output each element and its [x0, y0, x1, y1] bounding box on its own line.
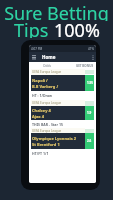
staticText: B.B Varberg / [32, 84, 59, 89]
button[interactable]: Chalcey 4 [29, 106, 96, 120]
staticText: Olympique Lyonnais 2 [32, 136, 76, 141]
button[interactable]: UEFA Europa League [29, 128, 96, 133]
staticText: 1.9 [87, 111, 92, 115]
button[interactable]: THIS BAR - Star 15 [29, 120, 96, 128]
staticText: Napoli / [32, 78, 48, 83]
staticText: HT/FT 1/1 [32, 151, 49, 156]
staticText: Odds [43, 64, 51, 68]
staticText: GET BONUS [76, 64, 94, 68]
other: Open navigation menu [32, 55, 36, 59]
staticText: UEFA Europa League [32, 129, 62, 133]
staticText: HT : 1/Draw [32, 93, 53, 98]
staticText: 41% [88, 47, 94, 51]
staticText: 1.95 [87, 81, 93, 85]
other: More options [92, 55, 94, 60]
staticText: UEFA Europa League [32, 70, 62, 74]
button[interactable]: UEFA Europa League [29, 100, 96, 106]
button[interactable]: Napoli / [29, 75, 96, 91]
button[interactable]: HT : 1/Draw [29, 91, 96, 100]
staticText: 100% [54, 18, 100, 38]
button[interactable]: HT/FT 1/1 [29, 149, 96, 158]
staticText: 4:07 PM [31, 47, 43, 51]
staticText: Chalcey 4 [32, 108, 51, 113]
button[interactable]: GET BONUS [76, 64, 94, 68]
staticText: THIS BAR - Star 15 [32, 122, 63, 127]
staticText: Sure Betting [4, 1, 109, 21]
staticText: UEFA Europa League [32, 101, 62, 105]
staticText: St Brentford 1 [32, 142, 60, 147]
staticText: Home [42, 54, 56, 60]
button[interactable]: UEFA Europa League [29, 69, 96, 75]
button[interactable]: Olympique Lyonnais 2 [29, 133, 96, 149]
staticText: Tips [14, 18, 54, 38]
staticText: 2.6 [87, 139, 92, 143]
staticText: Ajax 4 [32, 114, 44, 119]
